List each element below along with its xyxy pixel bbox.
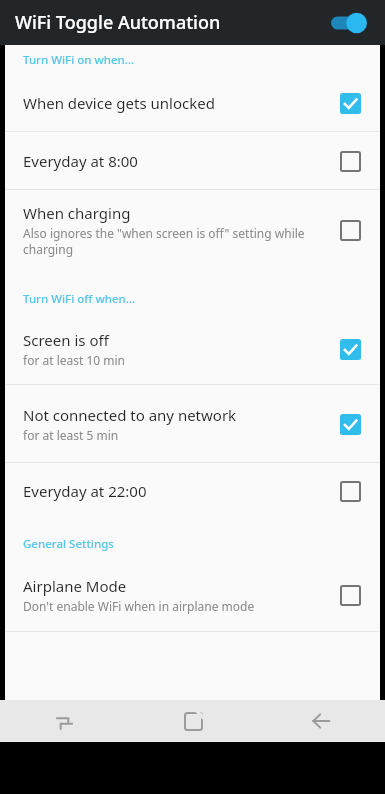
button[interactable]: Master toggle: [329, 9, 371, 37]
staticText: When charging: [23, 203, 131, 223]
button[interactable]: Recents: [0, 700, 129, 742]
button[interactable]: Screen is off: [5, 314, 380, 384]
staticText: Everyday at 8:00: [23, 151, 138, 171]
staticText: Everyday at 22:00: [23, 481, 147, 501]
staticText: Turn WiFi on when...: [23, 52, 135, 68]
staticText: Screen is off: [23, 330, 109, 350]
staticText: WiFi Toggle Automation: [15, 10, 329, 35]
staticText: Also ignores the "when screen is off" se…: [23, 225, 329, 257]
staticText: Airplane Mode: [23, 576, 127, 596]
button[interactable]: When device gets unlocked: [5, 75, 380, 131]
staticText: for at least 10 min: [23, 352, 126, 368]
staticText: General Settings: [23, 536, 114, 552]
button[interactable]: Everyday at 8:00: [5, 132, 380, 189]
button[interactable]: Airplane Mode: [5, 559, 380, 631]
staticText: Don't enable WiFi when in airplane mode: [23, 598, 255, 614]
staticText: Turn WiFi off when...: [23, 291, 136, 307]
button[interactable]: Back: [257, 700, 385, 742]
button[interactable]: Not connected to any network: [5, 385, 380, 462]
button[interactable]: When charging: [5, 190, 380, 270]
staticText: for at least 5 min: [23, 427, 119, 443]
button[interactable]: Everyday at 22:00: [5, 463, 380, 519]
button[interactable]: Home: [129, 700, 257, 742]
staticText: Not connected to any network: [23, 405, 237, 425]
staticText: When device gets unlocked: [23, 93, 215, 113]
